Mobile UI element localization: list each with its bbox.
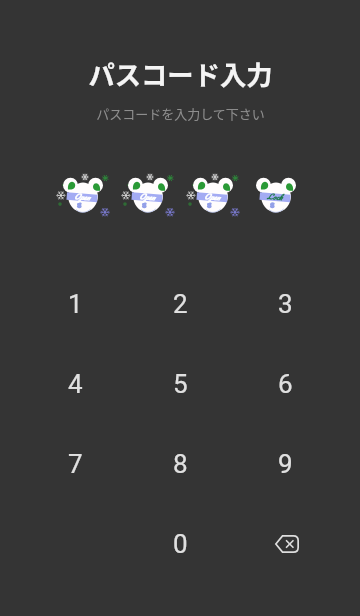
staticText: 4: [68, 369, 83, 399]
staticText: 3: [278, 289, 293, 319]
button[interactable]: 0: [128, 504, 233, 584]
staticText: パスコードを入力して下さい: [96, 104, 265, 123]
button[interactable]: Backspace: [233, 504, 338, 584]
button[interactable]: 8: [128, 424, 233, 504]
button[interactable]: 1: [23, 264, 128, 344]
staticText: 9: [278, 449, 293, 479]
staticText: 5: [173, 369, 188, 399]
staticText: 6: [278, 369, 293, 399]
staticText: 7: [68, 449, 83, 479]
staticText: Open: [73, 190, 90, 205]
button[interactable]: 2: [128, 264, 233, 344]
button[interactable]: 3: [233, 264, 338, 344]
button[interactable]: 9: [233, 424, 338, 504]
staticText: パスコード入力: [88, 54, 273, 92]
staticText: Open: [138, 190, 155, 205]
staticText: Open: [203, 190, 220, 205]
staticText: 1: [68, 289, 83, 319]
staticText: 0: [173, 529, 188, 559]
button[interactable]: 7: [23, 424, 128, 504]
other: Backspace: [264, 522, 308, 566]
staticText: Lock: [266, 190, 283, 205]
button[interactable]: 5: [128, 344, 233, 424]
button[interactable]: 4: [23, 344, 128, 424]
button[interactable]: 6: [233, 344, 338, 424]
staticText: 2: [173, 289, 188, 319]
staticText: 8: [173, 449, 188, 479]
